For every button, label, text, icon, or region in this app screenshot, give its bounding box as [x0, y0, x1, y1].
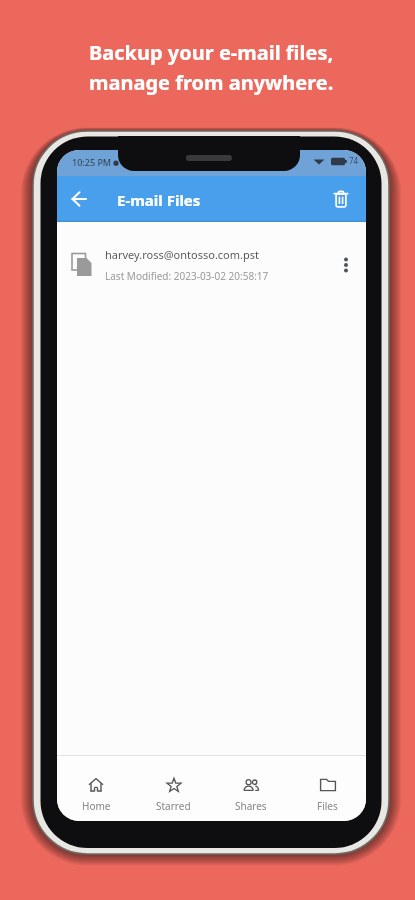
staticText: Home: [82, 799, 111, 813]
staticText: Shares: [235, 799, 267, 813]
button[interactable]: Files: [289, 756, 366, 821]
staticText: Starred: [156, 799, 191, 813]
staticText: Last Modified: 2023-03-02 20:58:17: [105, 269, 269, 283]
button[interactable]: Starred: [135, 756, 212, 821]
staticText: harvey.ross@ontosso.com.pst: [105, 247, 259, 262]
staticText: manage from anywhere.: [89, 69, 334, 96]
button[interactable]: [325, 183, 357, 215]
button[interactable]: Home: [57, 756, 135, 821]
staticText: 10:25 PM: [72, 156, 112, 168]
button[interactable]: [328, 247, 364, 283]
staticText: 74: [349, 155, 359, 166]
button[interactable]: harvey.ross@ontosso.com.pst: [57, 240, 366, 290]
button[interactable]: Shares: [212, 756, 289, 821]
staticText: E-mail Files: [117, 190, 201, 210]
button[interactable]: [63, 183, 95, 215]
staticText: Files: [317, 799, 338, 813]
staticText: Backup your e-mail files,: [89, 39, 334, 66]
